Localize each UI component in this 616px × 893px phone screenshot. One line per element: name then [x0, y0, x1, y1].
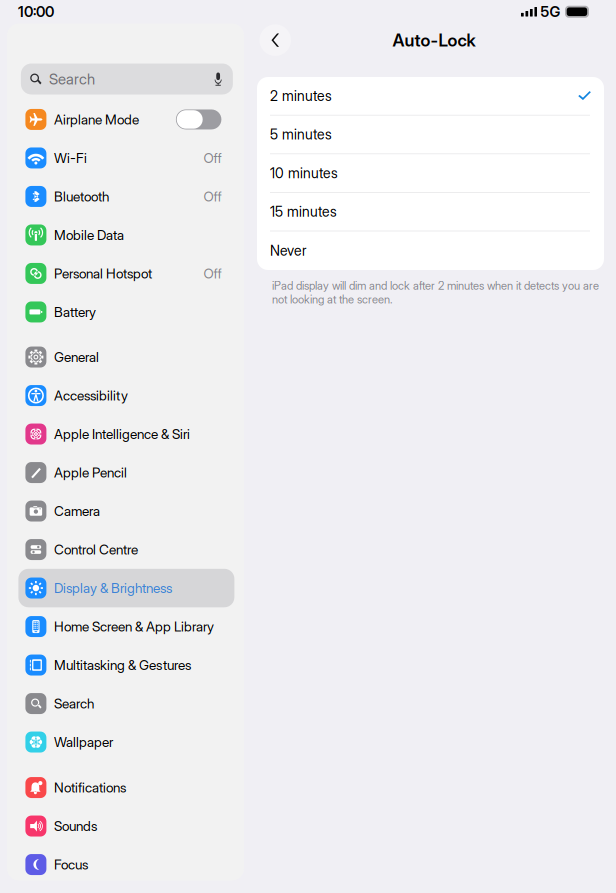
staticText: 15 minutes	[270, 203, 337, 220]
staticText: Notifications	[54, 779, 126, 796]
button[interactable]: 10 minutes	[257, 154, 604, 193]
staticText: Airplane Mode	[54, 111, 139, 128]
button[interactable]: Accessibility	[18, 376, 234, 415]
button[interactable]: Bluetooth	[18, 177, 234, 216]
staticText: Apple Intelligence & Siri	[54, 426, 190, 442]
button[interactable]: 15 minutes	[257, 193, 604, 231]
staticText: Auto-Lock	[392, 30, 475, 50]
staticText: Display & Brightness	[54, 580, 172, 596]
staticText: Wi-Fi	[54, 150, 87, 166]
staticText: Apple Pencil	[54, 464, 127, 481]
button[interactable]: Sounds	[18, 807, 234, 845]
staticText: 2 minutes	[270, 87, 332, 104]
button[interactable]: Search	[18, 684, 234, 723]
button[interactable]: Display & Brightness	[18, 569, 234, 607]
button[interactable]: 5 minutes	[257, 116, 604, 154]
button[interactable]: Personal Hotspot	[18, 254, 234, 293]
staticText: Never	[270, 242, 307, 259]
staticText: Mobile Data	[54, 227, 124, 243]
staticText: Control Centre	[54, 541, 138, 558]
staticText: Battery	[54, 304, 96, 320]
staticText: Off	[203, 265, 221, 282]
staticText: Off	[203, 150, 221, 166]
staticText: Sounds	[54, 818, 97, 834]
button[interactable]: General	[18, 338, 234, 376]
button[interactable]: Control Centre	[18, 530, 234, 569]
button[interactable]: Apple Intelligence & Siri	[18, 415, 234, 453]
staticText: iPad display will dim and lock after 2 m…	[272, 279, 599, 306]
button[interactable]: 2 minutes	[257, 77, 604, 116]
button[interactable]: Multitasking & Gestures	[18, 646, 234, 684]
staticText: Personal Hotspot	[54, 265, 152, 282]
staticText: Home Screen & App Library	[54, 618, 214, 635]
button[interactable]: Airplane Mode	[18, 100, 234, 139]
staticText: Wallpaper	[54, 734, 113, 750]
button[interactable]: Wi-Fi	[18, 139, 234, 177]
staticText: Off	[203, 188, 221, 205]
staticText: General	[54, 349, 99, 365]
button[interactable]: Notifications	[18, 768, 234, 807]
button[interactable]: Back	[259, 24, 291, 56]
staticText: Search	[49, 70, 95, 88]
staticText: 10 minutes	[270, 165, 338, 181]
button[interactable]: Apple Pencil	[18, 453, 234, 492]
staticText: 5 minutes	[270, 126, 332, 143]
staticText: Search	[54, 695, 94, 712]
staticText: Accessibility	[54, 387, 128, 404]
staticText: Bluetooth	[54, 188, 109, 205]
staticText: Camera	[54, 503, 100, 519]
staticText: 10:00	[18, 3, 54, 21]
button[interactable]: Focus	[18, 845, 234, 884]
button[interactable]: Mobile Data	[18, 216, 234, 254]
button[interactable]: Never	[257, 231, 604, 270]
button[interactable]: Camera	[18, 492, 234, 530]
button[interactable]: Wallpaper	[18, 723, 234, 761]
staticText: Multitasking & Gestures	[54, 657, 191, 673]
staticText: Focus	[54, 856, 88, 873]
staticText: 5G	[540, 3, 560, 21]
button[interactable]: Battery	[18, 293, 234, 331]
button[interactable]: Home Screen & App Library	[18, 607, 234, 646]
